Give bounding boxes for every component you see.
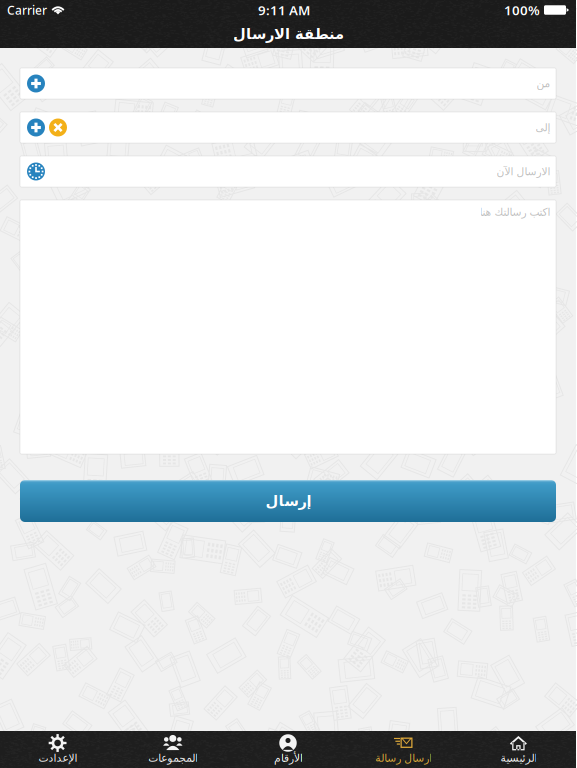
staticText: منطقة الارسال: [232, 26, 343, 42]
button[interactable]: ارسال رسالة: [346, 731, 461, 768]
staticText: إلى: [535, 121, 550, 133]
staticText: من: [536, 77, 550, 89]
button[interactable]: إرسال: [20, 480, 556, 522]
button[interactable]: الارسال الآن: [20, 156, 556, 187]
button[interactable]: إلى: [20, 112, 556, 143]
staticText: المجموعات: [148, 752, 198, 764]
staticText: 9:11 AM: [258, 1, 310, 19]
staticText: الإعدادت: [38, 752, 77, 764]
button[interactable]: الأرقام: [230, 731, 346, 768]
staticText: الرئيسية: [500, 752, 537, 764]
staticText: إرسال: [265, 493, 311, 509]
staticText: Carrier: [7, 2, 47, 18]
staticText: الأرقام: [273, 752, 302, 764]
button[interactable]: الإعدادت: [0, 731, 115, 768]
staticText: الارسال الآن: [496, 165, 550, 177]
button[interactable]: المجموعات: [115, 731, 230, 768]
button[interactable]: من: [20, 68, 556, 99]
staticText: اكتب رسالتك هنا: [479, 206, 550, 218]
staticText: 100%: [504, 1, 540, 19]
staticText: ارسال رسالة: [375, 752, 432, 764]
button[interactable]: الرئيسية: [461, 731, 576, 768]
